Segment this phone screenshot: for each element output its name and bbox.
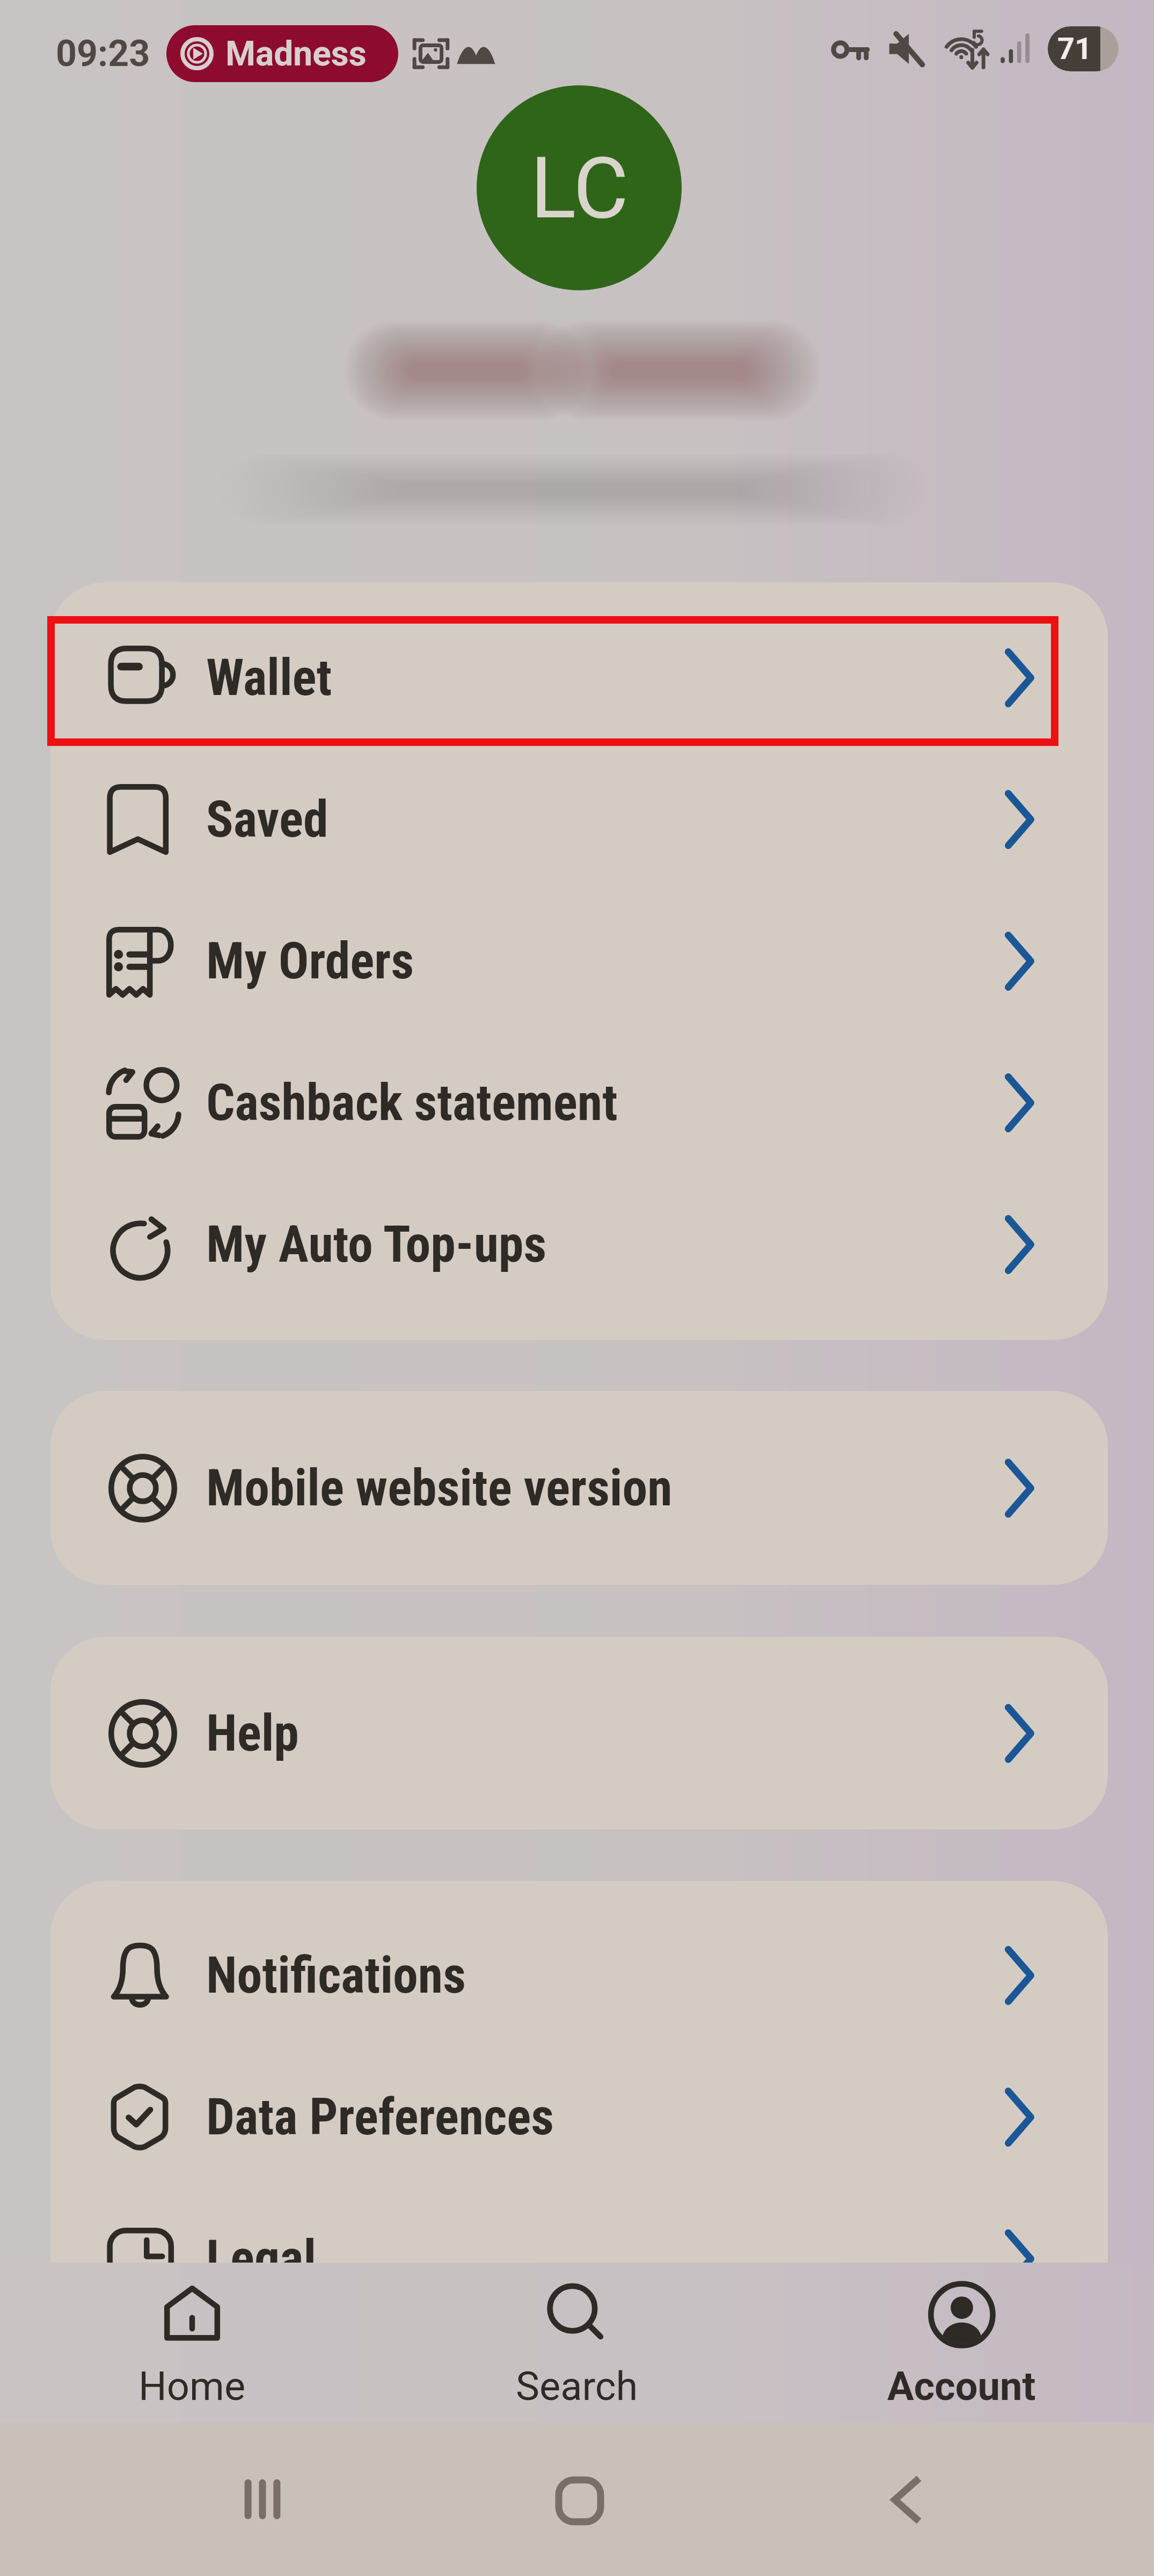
staticText: Madness: [225, 34, 367, 74]
button[interactable]: Cashback statement: [50, 1032, 1108, 1174]
staticText: Wallet: [206, 648, 332, 707]
staticText: Notifications: [206, 1946, 466, 2005]
staticText: Data Preferences: [206, 2088, 554, 2147]
staticText: Help: [206, 1704, 299, 1763]
other: Account: [923, 2276, 1000, 2353]
other: Search: [538, 2276, 616, 2353]
staticText: 09:23: [56, 32, 150, 75]
other: Home: [154, 2276, 231, 2353]
button[interactable]: My Orders: [50, 890, 1108, 1032]
button[interactable]: Mobile website version: [50, 1417, 1108, 1559]
staticText: Cashback statement: [206, 1073, 618, 1132]
button[interactable]: Saved: [50, 749, 1108, 890]
staticText: LC: [530, 138, 629, 238]
button[interactable]: Data Preferences: [50, 2046, 1108, 2188]
staticText: 71: [1057, 31, 1092, 67]
staticText: Account: [887, 2363, 1036, 2410]
staticText: Home: [138, 2363, 246, 2410]
button[interactable]: Search: [384, 2263, 769, 2423]
button[interactable]: Recent apps: [237, 2473, 288, 2525]
staticText: My Auto Top-ups: [206, 1215, 547, 1274]
button[interactable]: Wallet: [50, 607, 1108, 749]
button[interactable]: My Auto Top-ups: [50, 1174, 1108, 1315]
button[interactable]: Legal: [50, 2188, 1108, 2330]
button[interactable]: Home: [555, 2476, 604, 2526]
button[interactable]: Home: [0, 2263, 384, 2423]
staticText: My Orders: [206, 932, 414, 991]
staticText: Legal: [206, 2229, 317, 2288]
staticText: Mobile website version: [206, 1459, 673, 1518]
staticText: Saved: [206, 790, 328, 849]
button[interactable]: Notifications: [50, 1905, 1108, 2046]
button[interactable]: Back: [881, 2474, 933, 2526]
button[interactable]: Help: [50, 1663, 1108, 1804]
button[interactable]: Account: [769, 2263, 1154, 2423]
staticText: Search: [516, 2363, 638, 2410]
